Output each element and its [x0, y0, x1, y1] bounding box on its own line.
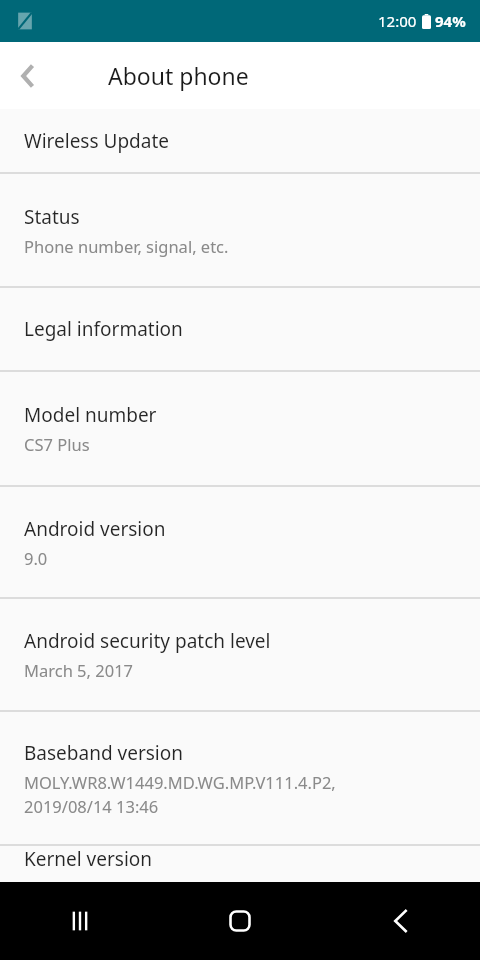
staticText: 12:00 [378, 11, 417, 31]
staticText: Android version [24, 516, 166, 542]
staticText: Wireless Update [24, 128, 170, 154]
staticText: 94% [435, 11, 466, 31]
button[interactable]: Status [0, 174, 480, 286]
button[interactable]: Android version [0, 487, 480, 597]
button[interactable]: Back [320, 882, 480, 960]
button[interactable]: Recent apps [0, 882, 160, 960]
staticText: Kernel version [24, 846, 153, 872]
staticText: Baseband version [24, 740, 183, 766]
staticText: March 5, 2017 [24, 659, 134, 681]
button[interactable]: Back [0, 48, 56, 104]
staticText: Model number [24, 402, 157, 428]
button[interactable]: Android security patch level [0, 599, 480, 710]
button[interactable]: Kernel version [0, 846, 480, 882]
staticText: CS7 Plus [24, 433, 90, 455]
button[interactable]: Model number [0, 372, 480, 485]
staticText: Phone number, signal, etc. [24, 235, 229, 257]
staticText: 2019/08/14 13:46 [24, 795, 159, 817]
staticText: Android security patch level [24, 628, 271, 654]
staticText: Legal information [24, 316, 183, 342]
staticText: Status [24, 204, 80, 230]
staticText: 9.0 [24, 547, 48, 569]
button[interactable]: Baseband version [0, 712, 480, 844]
button[interactable]: Legal information [0, 288, 480, 370]
button[interactable]: Wireless Update [0, 109, 480, 172]
staticText: About phone [108, 60, 249, 91]
button[interactable]: Home [160, 882, 320, 960]
staticText: MOLY.WR8.W1449.MD.WG.MP.V111.4.P2, [24, 771, 336, 793]
